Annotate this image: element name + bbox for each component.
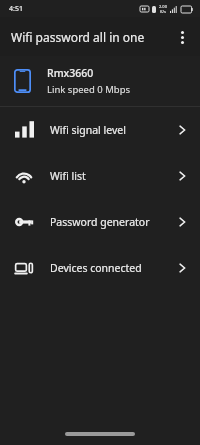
other: Devices connected xyxy=(14,258,34,278)
staticText: Password generator xyxy=(50,215,179,229)
staticText: Link speed 0 Mbps xyxy=(47,83,131,96)
staticText: Wifi signal level xyxy=(50,123,179,137)
staticText: Wifi list xyxy=(50,169,179,183)
staticText: Wifi password all in one xyxy=(11,29,145,45)
staticText: Rmx3660 xyxy=(47,66,94,80)
other: Wifi signal level xyxy=(14,120,34,140)
staticText: Devices connected xyxy=(50,261,179,275)
button[interactable]: Rmx3660 xyxy=(0,56,200,106)
staticText: 2.00 xyxy=(159,4,167,9)
other: Password generator xyxy=(14,212,34,232)
button[interactable]: Password generator xyxy=(0,199,200,245)
other: Wifi list xyxy=(14,166,34,186)
button[interactable]: Wifi list xyxy=(0,153,200,199)
button[interactable]: More options xyxy=(168,23,196,51)
staticText: K/s xyxy=(160,9,166,14)
staticText: 4:51 xyxy=(9,4,23,14)
button[interactable]: Devices connected xyxy=(0,245,200,291)
button[interactable]: Wifi signal level xyxy=(0,107,200,153)
